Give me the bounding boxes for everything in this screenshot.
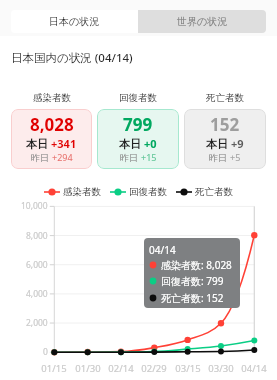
staticText: 本日 (206, 137, 228, 151)
staticText: +5 (230, 151, 241, 163)
staticText: 4,000 (26, 288, 48, 300)
staticText: 本日 (26, 137, 48, 151)
staticText: +9 (231, 136, 244, 151)
staticText: 0 (43, 346, 48, 358)
staticText: +341 (51, 136, 77, 151)
staticText: 03/15 (175, 362, 201, 375)
staticText: 回復者数: 799 (161, 274, 224, 288)
staticText: 感染者数 (63, 186, 101, 198)
button[interactable]: 日本の状況 (11, 10, 138, 33)
staticText: 日本の状況 (49, 15, 100, 28)
staticText: 01/30 (75, 362, 101, 375)
staticText: 152 (210, 113, 240, 136)
other: Chart data for 04/14 (144, 238, 240, 308)
staticText: 10,000 (21, 200, 48, 212)
staticText: +0 (144, 136, 157, 151)
staticText: 6,000 (26, 259, 48, 271)
staticText: 回復者数 (129, 186, 167, 198)
staticText: 昨日 (31, 152, 49, 163)
staticText: 感染者数: 8,028 (161, 258, 232, 272)
staticText: 03/30 (208, 362, 234, 375)
staticText: 02/14 (108, 362, 134, 375)
button[interactable]: 152 (184, 109, 266, 169)
staticText: 01/15 (41, 362, 67, 375)
staticText: 日本国内の状況 (04/14) (11, 50, 133, 66)
staticText: 04/14 (149, 243, 176, 257)
staticText: 昨日 (120, 152, 138, 163)
button[interactable]: 799 (97, 109, 179, 169)
staticText: 02/29 (141, 362, 167, 375)
staticText: 世界の状況 (177, 15, 228, 28)
staticText: 死亡者数 (195, 186, 233, 198)
staticText: 昨日 (209, 152, 227, 163)
staticText: 死亡者数 (206, 92, 244, 104)
button[interactable]: 回復者数 (110, 186, 167, 198)
staticText: 04/14 (241, 362, 267, 375)
button[interactable]: 8,028 (11, 109, 92, 169)
staticText: +15 (141, 151, 157, 163)
staticText: 2,000 (26, 317, 48, 329)
staticText: 回復者数 (119, 92, 157, 104)
button[interactable]: 世界の状況 (138, 10, 266, 33)
staticText: 799 (123, 113, 153, 136)
staticText: +294 (52, 151, 73, 163)
staticText: 感染者数 (33, 92, 71, 104)
staticText: 死亡者数: 152 (161, 291, 224, 305)
staticText: 8,000 (26, 230, 48, 242)
button[interactable]: 感染者数 (44, 186, 101, 198)
staticText: 本日 (119, 137, 141, 151)
button[interactable]: 死亡者数 (176, 186, 233, 198)
staticText: 8,028 (30, 113, 74, 136)
